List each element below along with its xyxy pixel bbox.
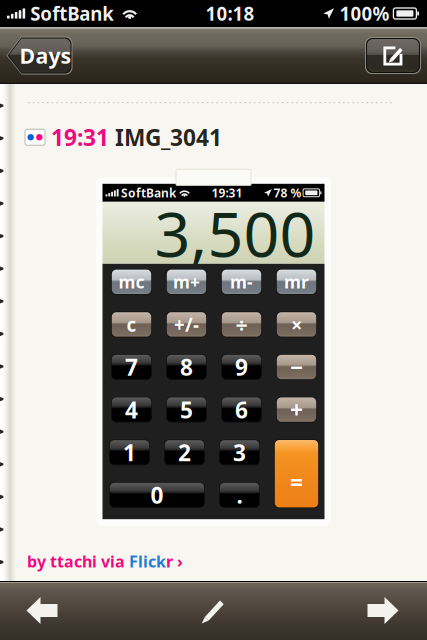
staticText: 19:31 [211, 185, 242, 201]
staticText: mr [284, 270, 309, 293]
staticText: 10:18 [206, 1, 255, 26]
staticText: m+ [173, 270, 200, 293]
staticText: − [290, 352, 303, 382]
staticText: 9 [235, 352, 248, 382]
staticText: 3 [233, 437, 246, 467]
staticText: × [291, 311, 302, 338]
staticText: Flick [129, 551, 166, 572]
staticText: 5 [180, 395, 193, 425]
staticText: 7 [125, 352, 138, 382]
staticText: 100% [339, 1, 389, 26]
staticText: = [290, 467, 303, 497]
staticText: 0 [150, 480, 163, 510]
staticText: Days [19, 41, 71, 70]
staticText: r › [166, 551, 183, 572]
staticText: IMG_3041 [115, 122, 222, 152]
button[interactable]: Next [343, 581, 423, 639]
button[interactable]: Edit [172, 581, 252, 639]
staticText: 8 [180, 352, 193, 382]
button[interactable]: Previous [2, 581, 82, 639]
staticText: 19:31 [51, 122, 109, 152]
staticText: 2 [178, 437, 191, 467]
staticText: 3,500 [154, 191, 315, 274]
staticText: +/- [174, 312, 199, 337]
staticText: 1 [123, 437, 136, 467]
staticText: 4 [125, 395, 138, 425]
staticText: SoftBank [121, 185, 176, 201]
staticText: 78 % [274, 185, 302, 201]
button[interactable]: Compose [365, 37, 421, 74]
staticText: ÷ [235, 310, 247, 338]
staticText: . [236, 480, 242, 510]
staticText: m- [230, 270, 253, 293]
staticText: SoftBank [30, 1, 114, 26]
staticText: mc [118, 270, 144, 293]
staticText: + [290, 395, 303, 425]
button[interactable]: Days [7, 36, 72, 74]
staticText: c [126, 312, 136, 337]
staticText: 6 [235, 395, 248, 425]
staticText: by ttachi via [27, 551, 129, 572]
